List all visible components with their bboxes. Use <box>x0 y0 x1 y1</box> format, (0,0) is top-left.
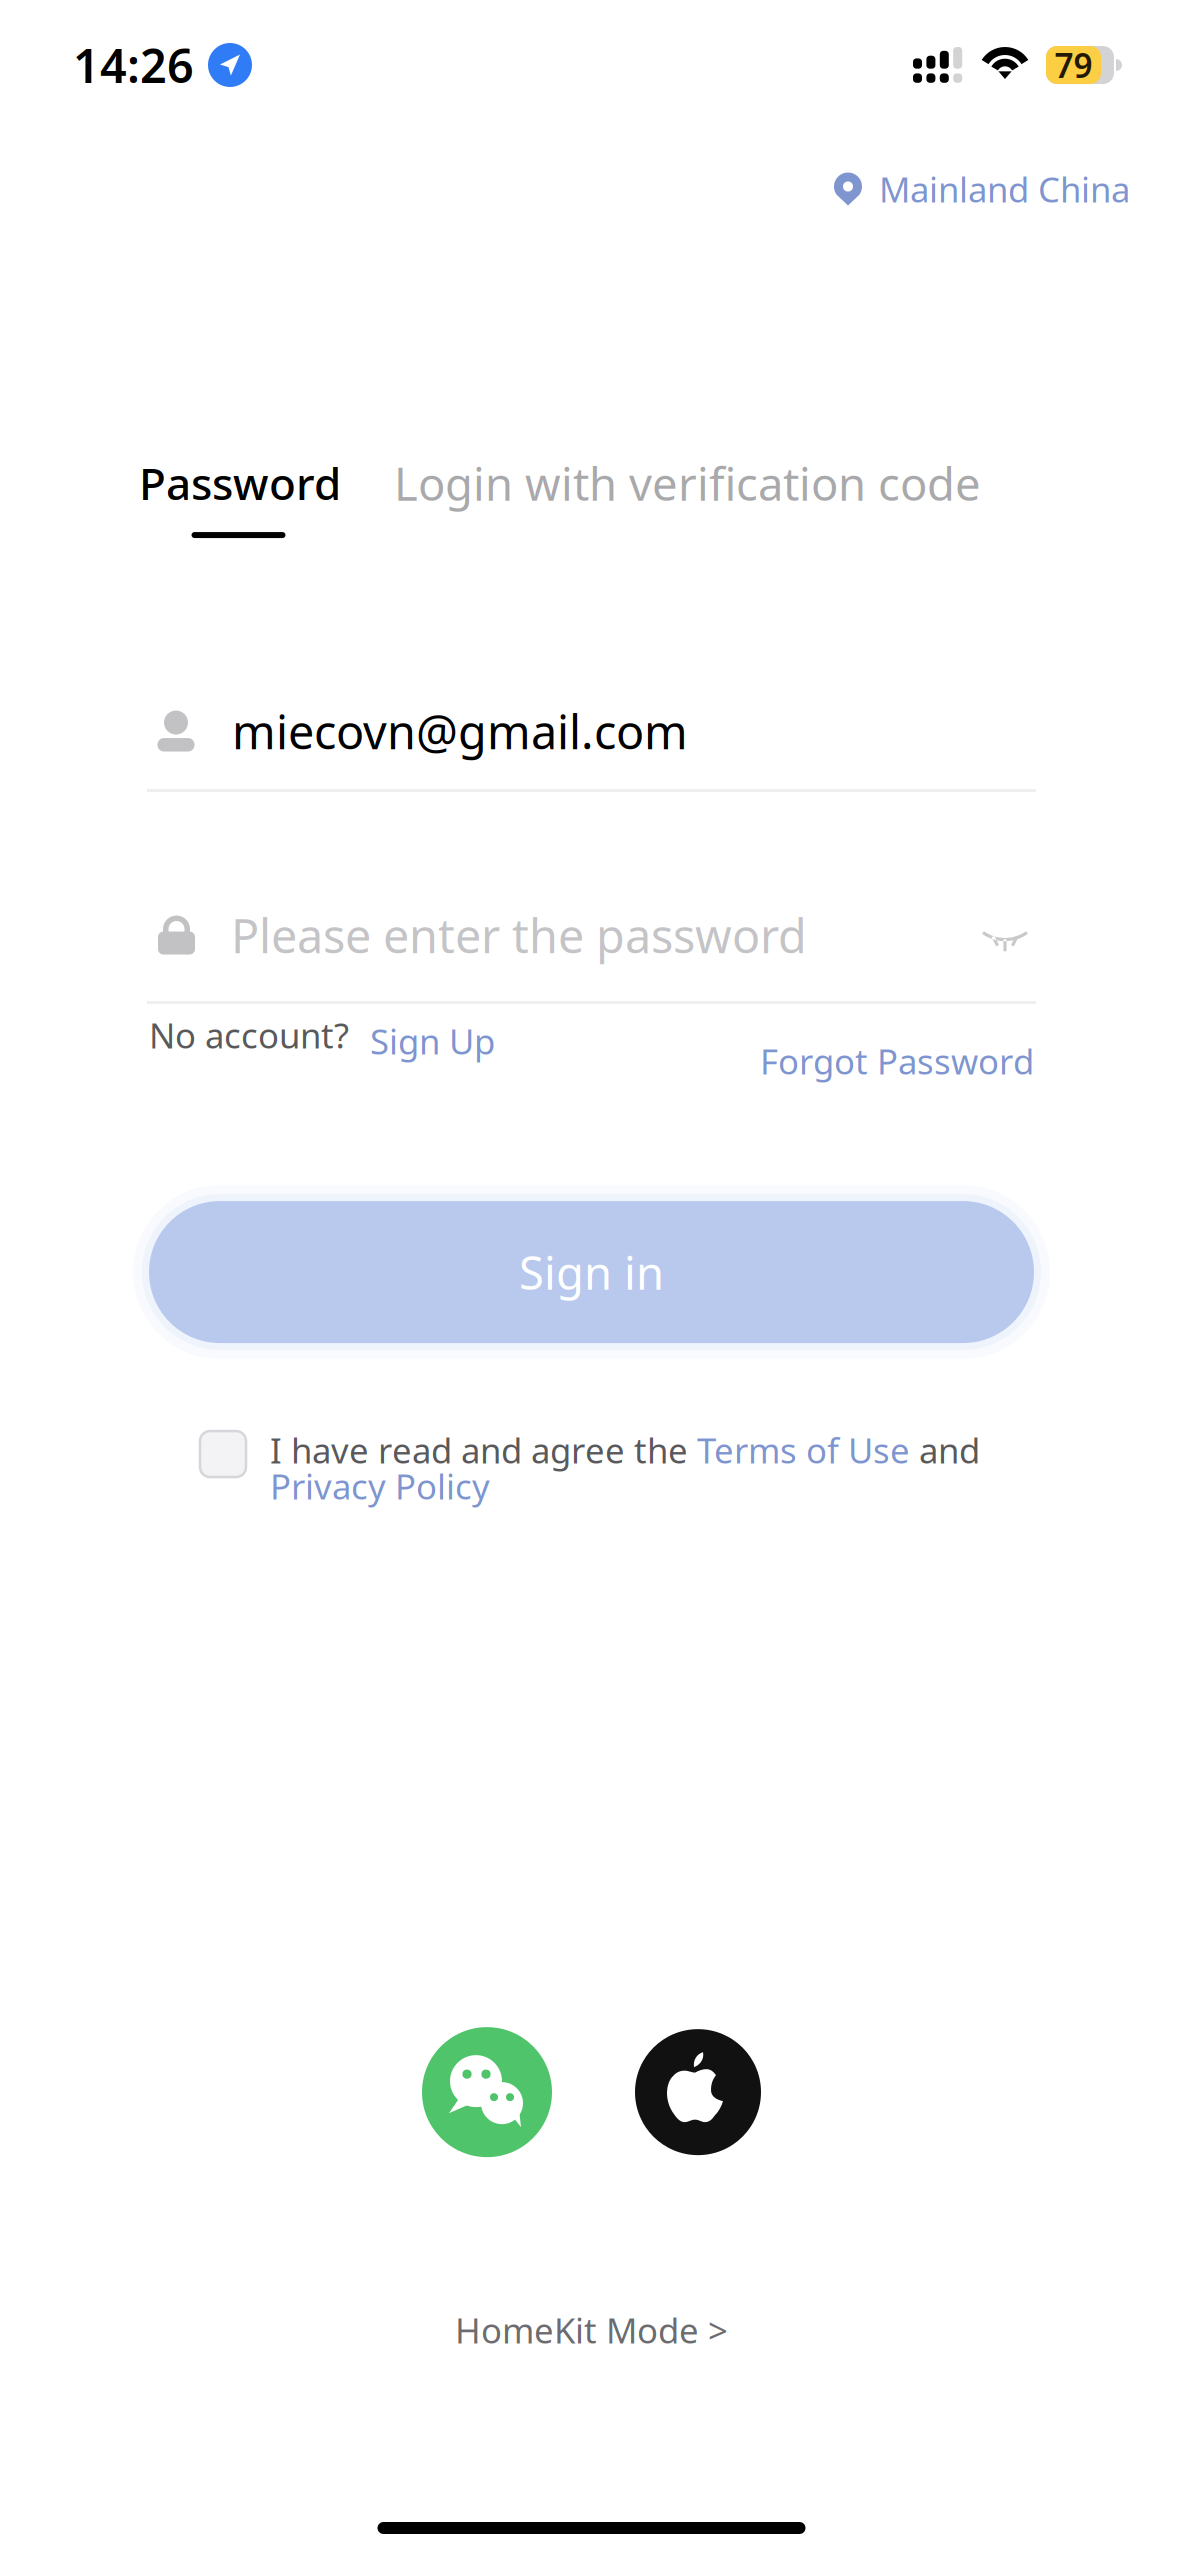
staticText: 79 <box>1054 43 1092 87</box>
staticText: HomeKit Mode > <box>455 2307 728 2353</box>
button[interactable]: Login with verification code <box>349 461 994 505</box>
button[interactable]: Forgot Password <box>760 1012 1034 1090</box>
staticText: 14:26 <box>73 34 194 96</box>
button[interactable]: Mainland China <box>834 158 1183 220</box>
staticText: Mainland China <box>879 166 1130 212</box>
staticText: Sign in <box>519 1242 664 1302</box>
staticText: Privacy Policy <box>270 1463 490 1509</box>
button[interactable]: Sign Up <box>349 1012 495 1070</box>
staticText: Password <box>139 454 341 512</box>
staticText: I have read and agree the <box>270 1427 697 1473</box>
staticText: miecovn@gmail.com <box>232 700 688 762</box>
button[interactable]: Show password <box>959 910 1036 960</box>
staticText: Sign Up <box>370 1018 495 1064</box>
button[interactable]: Sign in with Apple <box>635 2029 761 2155</box>
staticText: Please enter the password <box>231 904 807 966</box>
staticText: Forgot Password <box>760 1038 1034 1084</box>
button[interactable]: HomeKit Mode > <box>0 2293 1183 2367</box>
staticText: Login with verification code <box>394 453 981 513</box>
staticText: Terms of Use <box>697 1427 910 1473</box>
button[interactable]: I have read and agree the <box>200 1427 1063 1509</box>
button[interactable]: Password <box>139 461 349 538</box>
button[interactable]: Sign in with WeChat <box>422 2027 552 2157</box>
staticText: and <box>910 1427 980 1473</box>
button[interactable]: Sign in <box>149 1201 1034 1343</box>
staticText: No account? <box>149 1012 349 1058</box>
